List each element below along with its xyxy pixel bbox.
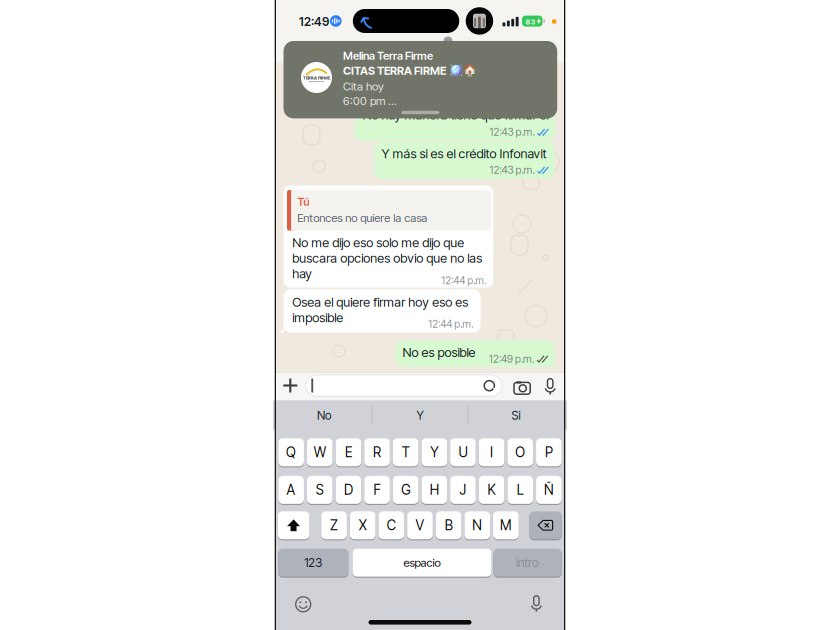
staticText: Melina Terra Firme <box>343 49 433 62</box>
button[interactable]: O <box>507 438 533 467</box>
button[interactable]: N <box>464 511 490 540</box>
staticText: D <box>344 482 353 498</box>
staticText: Entonces no quiere la casa <box>297 211 427 225</box>
staticText: Ñ <box>544 482 554 498</box>
button[interactable]: Delete <box>529 511 562 540</box>
staticText: Y <box>430 444 438 461</box>
button[interactable]: A <box>278 475 304 504</box>
staticText: Tú <box>297 195 310 208</box>
staticText: 12:43 p.m. <box>489 164 534 176</box>
button[interactable]: K <box>479 475 504 504</box>
button[interactable]: C <box>378 511 404 540</box>
button[interactable]: Y <box>372 408 468 423</box>
staticText: J <box>459 482 466 498</box>
staticText: R <box>373 444 381 461</box>
staticText: 123 <box>304 555 322 570</box>
staticText: CITAS TERRA FIRME <box>343 64 446 77</box>
button[interactable]: J <box>450 475 476 504</box>
staticText: 12:49 p.m. <box>489 353 534 365</box>
staticText: 12:44 p.m. <box>428 318 473 330</box>
button[interactable]: Emoji <box>295 596 311 612</box>
staticText: 83 <box>525 17 535 26</box>
staticText: C <box>387 517 396 534</box>
staticText: B <box>445 517 453 534</box>
button[interactable]: intro <box>493 548 562 577</box>
staticText: F <box>373 482 380 498</box>
staticText: Si <box>511 408 520 423</box>
button[interactable]: Attach <box>283 378 297 392</box>
button[interactable]: I <box>479 438 504 467</box>
staticText: V <box>415 517 424 534</box>
staticText: E <box>345 444 352 461</box>
button[interactable]: Si <box>468 408 564 423</box>
staticText: 12:49 <box>299 14 329 29</box>
button[interactable]: Dictation <box>530 596 542 612</box>
button[interactable]: TERRA FIRME <box>283 41 557 118</box>
staticText: O <box>515 444 525 461</box>
staticText: W <box>314 444 326 461</box>
button[interactable]: Z <box>321 511 347 540</box>
button[interactable]: W <box>307 438 332 467</box>
staticText: Osea el quiere firmar hoy eso es imposib… <box>292 294 468 325</box>
staticText: L <box>517 482 524 498</box>
button[interactable]: X <box>350 511 375 540</box>
button[interactable]: Dictate <box>544 379 556 395</box>
staticText: No me dijo eso solo me dijo que buscara … <box>292 235 482 281</box>
staticText: No es posible <box>402 345 475 360</box>
staticText: 🪩🏠 <box>448 64 476 77</box>
button[interactable]: V <box>407 511 433 540</box>
button[interactable]: Ñ <box>536 475 562 504</box>
button[interactable]: F <box>364 475 390 504</box>
button[interactable]: E <box>336 438 361 467</box>
staticText: No <box>317 408 331 423</box>
button[interactable]: espacio <box>352 548 491 577</box>
staticText: U <box>458 444 467 461</box>
button[interactable]: L <box>507 475 533 504</box>
button[interactable]: No <box>276 408 372 423</box>
staticText: M <box>500 517 512 534</box>
staticText: X <box>359 517 367 534</box>
staticText: A <box>287 482 296 498</box>
staticText: N <box>472 517 482 534</box>
staticText: intro <box>516 555 539 570</box>
button[interactable]: H <box>421 475 447 504</box>
staticText: 6:00 pm ... <box>343 94 397 108</box>
button[interactable]: Q <box>278 438 304 467</box>
staticText: 12:43 p.m. <box>489 126 534 138</box>
staticText: H <box>430 482 439 498</box>
staticText: Y más si es el crédito Infonavit <box>381 146 546 161</box>
button[interactable]: Shift <box>278 511 309 540</box>
button[interactable]: U <box>450 438 476 467</box>
button[interactable]: R <box>364 438 390 467</box>
staticText: Y <box>416 408 423 423</box>
button[interactable]: S <box>307 475 332 504</box>
button[interactable]: P <box>536 438 562 467</box>
button[interactable]: T <box>393 438 418 467</box>
staticText: T <box>402 444 410 461</box>
staticText: No hay manera tiene que firmar el <box>362 107 548 122</box>
staticText: 12:44 p.m. <box>441 274 486 287</box>
staticText: Q <box>286 444 296 461</box>
staticText: S <box>316 482 324 498</box>
staticText: I <box>490 444 493 461</box>
staticText: P <box>545 444 553 461</box>
button[interactable]: D <box>336 475 361 504</box>
button[interactable]: M <box>493 511 519 540</box>
button[interactable]: 123 <box>278 548 348 577</box>
staticText: Cita hoy <box>343 79 384 93</box>
staticText: G <box>401 482 410 498</box>
button[interactable]: G <box>393 475 418 504</box>
button[interactable]: B <box>436 511 461 540</box>
button[interactable]: Message <box>306 375 502 396</box>
button[interactable]: Camera <box>514 380 530 394</box>
staticText: TERRA FIRME <box>303 76 330 81</box>
staticText: K <box>488 482 496 498</box>
button[interactable]: Y <box>421 438 447 467</box>
staticText: Z <box>330 517 338 534</box>
staticText: espacio <box>403 556 440 570</box>
